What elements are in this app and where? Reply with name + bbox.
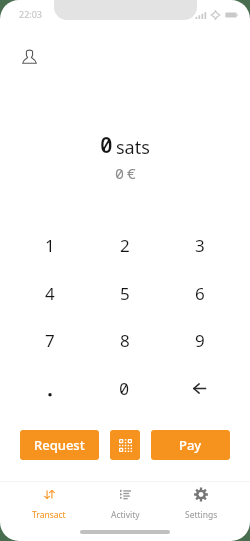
staticText: 8 bbox=[120, 329, 130, 352]
staticText: Request bbox=[34, 436, 85, 454]
button[interactable]: Request bbox=[20, 430, 99, 460]
staticText: 22:03 bbox=[19, 8, 43, 20]
other: Backspace bbox=[190, 378, 210, 398]
button[interactable]: 4 bbox=[13, 269, 87, 317]
button[interactable]: Decimal point bbox=[13, 364, 87, 412]
button[interactable]: 0 bbox=[87, 364, 162, 412]
button[interactable]: 8 bbox=[87, 316, 162, 364]
button[interactable]: Pay bbox=[151, 430, 230, 460]
staticText: 6 bbox=[195, 282, 205, 305]
staticText: Transact bbox=[32, 509, 66, 521]
button[interactable]: Scan QR code bbox=[110, 430, 140, 460]
other: Decimal point bbox=[40, 378, 60, 398]
button[interactable]: Backspace bbox=[162, 364, 237, 412]
button[interactable]: 9 bbox=[162, 316, 237, 364]
button[interactable]: 6 bbox=[162, 269, 237, 317]
staticText: sats bbox=[116, 135, 150, 160]
staticText: Activity bbox=[111, 509, 140, 521]
staticText: 5 bbox=[120, 282, 130, 305]
staticText: Settings bbox=[185, 509, 218, 521]
button[interactable]: Profile bbox=[15, 42, 43, 70]
staticText: Pay bbox=[179, 436, 202, 454]
staticText: 0 bbox=[119, 377, 130, 400]
button[interactable]: 3 bbox=[162, 221, 237, 269]
staticText: 3 bbox=[195, 234, 205, 257]
staticText: 0 bbox=[115, 163, 125, 183]
staticText: 2 bbox=[120, 234, 130, 257]
button[interactable]: Transact bbox=[11, 482, 87, 527]
button[interactable]: 5 bbox=[87, 269, 162, 317]
button[interactable]: Activity bbox=[87, 482, 163, 527]
staticText: € bbox=[127, 163, 136, 183]
staticText: 0 bbox=[100, 131, 113, 160]
staticText: 4 bbox=[45, 282, 55, 305]
staticText: 9 bbox=[195, 329, 205, 352]
staticText: 1 bbox=[45, 234, 55, 257]
button[interactable]: 7 bbox=[13, 316, 87, 364]
button[interactable]: 2 bbox=[87, 221, 162, 269]
staticText: 7 bbox=[45, 329, 55, 352]
button[interactable]: 1 bbox=[13, 221, 87, 269]
button[interactable]: Settings bbox=[163, 482, 239, 527]
